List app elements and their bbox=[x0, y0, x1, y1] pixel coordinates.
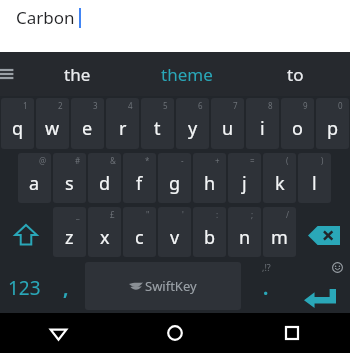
staticText: the bbox=[64, 63, 91, 86]
button[interactable]: Space bbox=[85, 262, 241, 310]
staticText: " bbox=[146, 209, 150, 220]
staticText: ( bbox=[286, 155, 289, 166]
button[interactable]: Recents bbox=[233, 313, 350, 353]
staticText: - bbox=[181, 155, 184, 166]
staticText: z bbox=[65, 225, 74, 250]
staticText: a bbox=[29, 171, 40, 196]
button[interactable]: the bbox=[22, 63, 132, 86]
staticText: ; bbox=[251, 209, 254, 220]
button[interactable]: / bbox=[263, 207, 296, 257]
staticText: . bbox=[263, 275, 269, 301]
staticText: / bbox=[286, 209, 289, 220]
staticText: 0 bbox=[338, 100, 343, 111]
staticText: £ bbox=[110, 209, 115, 220]
staticText: w bbox=[45, 116, 60, 141]
staticText: * bbox=[145, 155, 150, 166]
button[interactable]: Back bbox=[0, 313, 116, 353]
staticText: b bbox=[204, 225, 216, 250]
staticText: n bbox=[239, 225, 251, 250]
button[interactable]: : bbox=[193, 207, 226, 257]
staticText: = bbox=[250, 155, 255, 166]
staticText: h bbox=[204, 171, 216, 196]
button[interactable]: 0 bbox=[316, 98, 349, 149]
button[interactable]: ,!? bbox=[243, 259, 289, 313]
button[interactable]: 4 bbox=[106, 98, 139, 149]
staticText: e bbox=[82, 116, 93, 141]
button[interactable]: Emoji bbox=[330, 260, 344, 274]
button[interactable]: ' bbox=[158, 207, 191, 257]
button[interactable]: 2 bbox=[36, 98, 69, 149]
staticText: @ bbox=[39, 155, 47, 166]
staticText: 2 bbox=[58, 100, 63, 111]
staticText: Carbon bbox=[16, 6, 75, 29]
button[interactable]: ; bbox=[228, 207, 261, 257]
button[interactable]: + bbox=[193, 153, 226, 203]
staticText: d bbox=[99, 171, 111, 196]
staticText: p bbox=[327, 116, 339, 141]
staticText: 8 bbox=[268, 100, 273, 111]
staticText: l bbox=[312, 171, 317, 196]
staticText: q bbox=[12, 116, 24, 141]
button[interactable]: , bbox=[49, 259, 83, 313]
button[interactable]: ) bbox=[298, 153, 331, 203]
staticText: u bbox=[222, 116, 234, 141]
button[interactable]: * bbox=[123, 153, 156, 203]
button[interactable]: 5 bbox=[141, 98, 174, 149]
button[interactable]: 7 bbox=[211, 98, 244, 149]
staticText: t bbox=[154, 116, 161, 141]
staticText: SwiftKey bbox=[145, 277, 197, 295]
staticText: to bbox=[287, 63, 304, 86]
staticText: g bbox=[169, 171, 181, 196]
button[interactable]: # bbox=[53, 153, 86, 203]
button[interactable]: 3 bbox=[71, 98, 104, 149]
staticText: 1 bbox=[23, 100, 28, 111]
staticText: c bbox=[135, 225, 144, 250]
staticText: + bbox=[215, 155, 220, 166]
button[interactable]: - bbox=[158, 153, 191, 203]
staticText: theme bbox=[161, 63, 213, 86]
button[interactable]: 9 bbox=[281, 98, 314, 149]
button[interactable]: 8 bbox=[246, 98, 279, 149]
staticText: s bbox=[65, 171, 74, 196]
button[interactable]: 6 bbox=[176, 98, 209, 149]
button[interactable]: 123 bbox=[0, 259, 49, 313]
staticText: r bbox=[119, 116, 127, 141]
staticText: y bbox=[188, 116, 198, 141]
button[interactable]: _ bbox=[53, 207, 86, 257]
button[interactable]: Backspace bbox=[297, 205, 350, 259]
staticText: j bbox=[242, 171, 247, 196]
staticText: : bbox=[216, 209, 219, 220]
staticText: , bbox=[63, 275, 69, 301]
staticText: & bbox=[110, 155, 116, 166]
staticText: k bbox=[275, 171, 285, 196]
button[interactable]: ( bbox=[263, 153, 296, 203]
button[interactable]: = bbox=[228, 153, 261, 203]
button[interactable]: Home bbox=[116, 313, 233, 353]
staticText: 4 bbox=[128, 100, 133, 111]
staticText: 6 bbox=[198, 100, 203, 111]
button[interactable]: Shift bbox=[0, 205, 52, 259]
button[interactable]: 1 bbox=[1, 98, 34, 149]
staticText: i bbox=[260, 116, 265, 141]
staticText: m bbox=[271, 225, 288, 250]
staticText: v bbox=[170, 225, 180, 250]
staticText: ' bbox=[182, 209, 184, 220]
button[interactable]: Enter bbox=[304, 289, 336, 307]
staticText: ,!? bbox=[262, 261, 271, 273]
button[interactable]: & bbox=[88, 153, 121, 203]
staticText: 123 bbox=[8, 275, 41, 301]
staticText: ) bbox=[321, 155, 324, 166]
button[interactable]: theme bbox=[132, 63, 241, 86]
staticText: f bbox=[136, 171, 143, 196]
button[interactable]: Menu bbox=[0, 63, 22, 85]
staticText: 5 bbox=[163, 100, 168, 111]
staticText: # bbox=[75, 155, 81, 166]
staticText: x bbox=[100, 225, 110, 250]
staticText: 3 bbox=[93, 100, 98, 111]
staticText: 7 bbox=[233, 100, 238, 111]
staticText: 9 bbox=[303, 100, 308, 111]
button[interactable]: @ bbox=[18, 153, 51, 203]
button[interactable]: " bbox=[123, 207, 156, 257]
button[interactable]: to bbox=[241, 63, 350, 86]
button[interactable]: £ bbox=[88, 207, 121, 257]
